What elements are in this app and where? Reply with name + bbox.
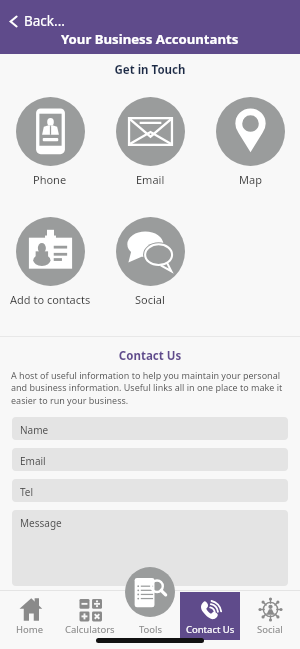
staticText: Get in Touch: [0, 62, 300, 78]
staticText: Tools: [139, 623, 163, 636]
staticText: Contact Us: [186, 623, 235, 636]
staticText: Social: [135, 292, 165, 307]
button[interactable]: Social: [100, 217, 200, 307]
button[interactable]: Back...: [4, 10, 68, 32]
button[interactable]: Tools: [120, 592, 180, 640]
button[interactable]: Tel: [12, 479, 288, 502]
staticText: Email: [136, 172, 165, 187]
button[interactable]: Social: [240, 592, 300, 640]
staticText: Map: [239, 172, 262, 187]
button[interactable]: Email: [100, 97, 200, 187]
button[interactable]: Name: [12, 417, 288, 440]
button[interactable]: Home: [0, 592, 60, 640]
button[interactable]: Phone: [0, 97, 100, 187]
staticText: Phone: [33, 172, 67, 187]
button[interactable]: Email: [12, 448, 288, 471]
staticText: Home: [16, 623, 44, 636]
button[interactable]: Add to contacts: [0, 217, 100, 307]
staticText: Tel: [20, 485, 34, 499]
staticText: Email: [20, 454, 46, 468]
staticText: Name: [20, 423, 49, 437]
staticText: A host of useful information to help you…: [11, 369, 290, 407]
button[interactable]: Map: [200, 97, 300, 187]
button[interactable]: Calculators: [60, 592, 120, 640]
button[interactable]: Message: [12, 510, 288, 586]
staticText: Message: [20, 516, 62, 530]
button[interactable]: Tools: [125, 567, 175, 617]
staticText: Contact Us: [0, 348, 300, 364]
button[interactable]: Contact Us: [180, 592, 240, 640]
staticText: Add to contacts: [10, 292, 91, 307]
staticText: Your Business Accountants: [61, 30, 239, 48]
staticText: Calculators: [65, 623, 115, 636]
staticText: Back...: [24, 12, 65, 30]
staticText: Social: [257, 623, 283, 636]
